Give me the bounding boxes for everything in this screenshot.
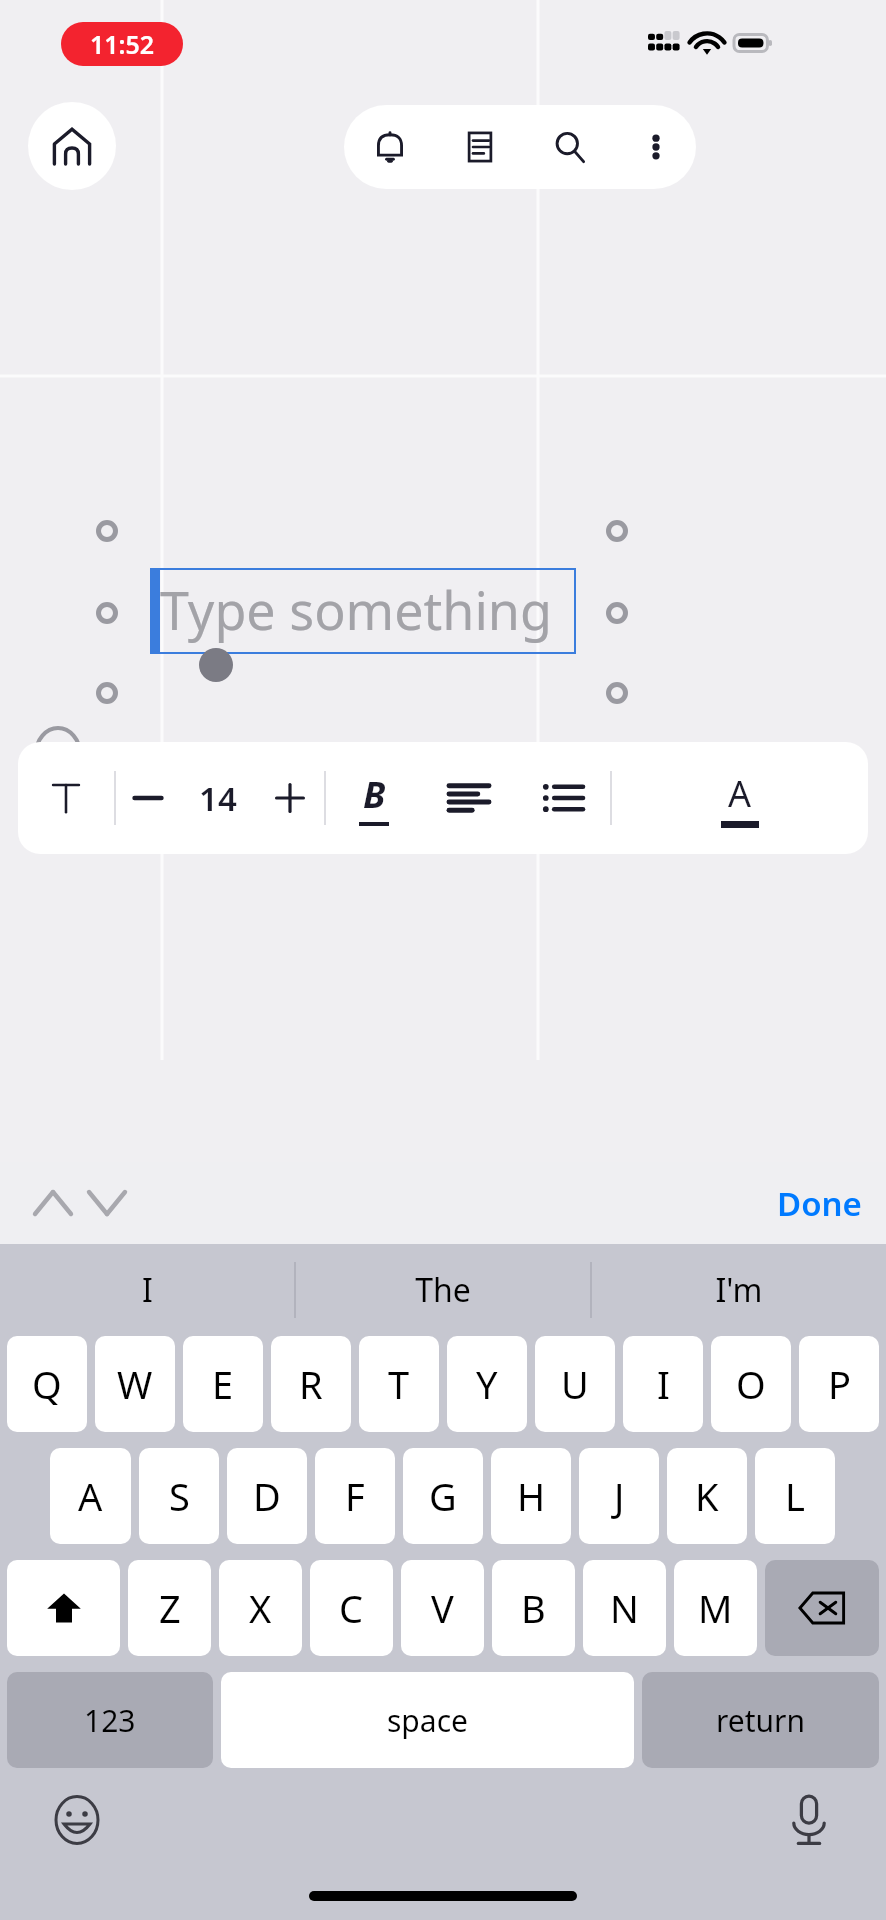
staticText: Z — [159, 1582, 181, 1634]
staticText: 123 — [84, 1700, 136, 1741]
button[interactable]: Emoji — [44, 1787, 110, 1853]
button[interactable]: Resize handle — [96, 520, 118, 542]
button[interactable]: Type something — [150, 568, 576, 654]
button[interactable]: Previous field — [26, 1176, 80, 1230]
button[interactable]: X — [219, 1560, 302, 1656]
button[interactable]: J — [579, 1448, 659, 1544]
staticText: The — [415, 1268, 471, 1312]
button[interactable]: More options — [615, 105, 696, 189]
staticText: space — [387, 1700, 468, 1741]
button[interactable]: O — [711, 1336, 791, 1432]
button[interactable]: P — [799, 1336, 879, 1432]
button[interactable]: Resize handle — [606, 682, 628, 704]
button[interactable]: The — [296, 1244, 590, 1336]
button[interactable]: return — [642, 1672, 879, 1768]
staticText: E — [212, 1358, 234, 1410]
staticText: Y — [476, 1358, 498, 1410]
button[interactable]: F — [315, 1448, 395, 1544]
button[interactable]: U — [535, 1336, 615, 1432]
button[interactable]: N — [583, 1560, 666, 1656]
button[interactable]: Y — [447, 1336, 527, 1432]
staticText: B — [521, 1582, 546, 1634]
staticText: return — [716, 1700, 806, 1741]
staticText: S — [169, 1470, 190, 1522]
button[interactable]: Next field — [80, 1176, 134, 1230]
staticText: W — [117, 1358, 153, 1410]
button[interactable]: A — [50, 1448, 131, 1544]
button[interactable]: G — [403, 1448, 483, 1544]
staticText: I — [142, 1268, 153, 1312]
button[interactable]: space — [221, 1672, 634, 1768]
staticText: Q — [32, 1358, 62, 1410]
button[interactable]: V — [401, 1560, 484, 1656]
staticText: A — [78, 1470, 103, 1522]
button[interactable]: Bold — [326, 742, 422, 854]
button[interactable]: B — [492, 1560, 575, 1656]
button[interactable]: Backspace — [765, 1560, 879, 1656]
button[interactable]: Done — [777, 1181, 862, 1226]
button[interactable]: Home — [28, 102, 116, 190]
button[interactable]: Z — [128, 1560, 211, 1656]
staticText: Done — [777, 1181, 862, 1226]
button[interactable]: Resize handle — [96, 602, 118, 624]
staticText: Type something — [160, 574, 552, 645]
staticText: H — [517, 1470, 546, 1522]
staticText: V — [431, 1582, 454, 1634]
staticText: X — [249, 1582, 272, 1634]
staticText: C — [339, 1582, 364, 1634]
staticText: D — [253, 1470, 281, 1522]
staticText: M — [698, 1582, 733, 1634]
staticText: G — [429, 1470, 457, 1522]
button[interactable]: H — [491, 1448, 571, 1544]
staticText: N — [610, 1582, 639, 1634]
button[interactable]: Dictation — [776, 1787, 842, 1853]
button[interactable]: I'm — [592, 1244, 886, 1336]
staticText: P — [828, 1358, 851, 1410]
staticText: U — [561, 1358, 589, 1410]
button[interactable]: Text color — [612, 742, 868, 854]
button[interactable]: Search — [525, 105, 615, 189]
button[interactable]: Drag handle — [199, 648, 233, 682]
staticText: A — [728, 769, 752, 818]
staticText: I — [657, 1358, 670, 1410]
staticText: T — [388, 1358, 410, 1410]
staticText: F — [345, 1470, 365, 1522]
button[interactable]: 14 — [180, 742, 256, 854]
button[interactable]: Notifications — [344, 105, 435, 189]
button[interactable]: M — [674, 1560, 757, 1656]
button[interactable]: L — [755, 1448, 835, 1544]
staticText: B — [363, 770, 386, 819]
button[interactable]: W — [95, 1336, 175, 1432]
button[interactable]: Decrease font size — [116, 742, 180, 854]
staticText: O — [736, 1358, 766, 1410]
button[interactable]: Shift — [7, 1560, 120, 1656]
staticText: 14 — [199, 776, 237, 821]
button[interactable]: 123 — [7, 1672, 213, 1768]
button[interactable]: Text style — [18, 742, 114, 854]
button[interactable]: Document — [435, 105, 525, 189]
button[interactable]: C — [310, 1560, 393, 1656]
button[interactable]: Q — [7, 1336, 87, 1432]
button[interactable]: K — [667, 1448, 747, 1544]
button[interactable]: Resize handle — [96, 682, 118, 704]
button[interactable]: Resize handle — [606, 602, 628, 624]
button[interactable]: D — [227, 1448, 307, 1544]
button[interactable]: Increase font size — [256, 742, 324, 854]
button[interactable]: Bulleted list — [516, 742, 610, 854]
button[interactable]: I — [623, 1336, 703, 1432]
button[interactable]: S — [139, 1448, 219, 1544]
staticText: R — [299, 1358, 323, 1410]
staticText: K — [695, 1470, 719, 1522]
staticText: I'm — [715, 1268, 763, 1312]
button[interactable]: T — [359, 1336, 439, 1432]
button[interactable]: R — [271, 1336, 351, 1432]
button[interactable]: I — [0, 1244, 294, 1336]
staticText: J — [614, 1470, 625, 1522]
button[interactable]: Resize handle — [606, 520, 628, 542]
staticText: L — [785, 1470, 805, 1522]
staticText: 11:52 — [90, 27, 155, 61]
button[interactable]: Align — [422, 742, 516, 854]
button[interactable]: E — [183, 1336, 263, 1432]
